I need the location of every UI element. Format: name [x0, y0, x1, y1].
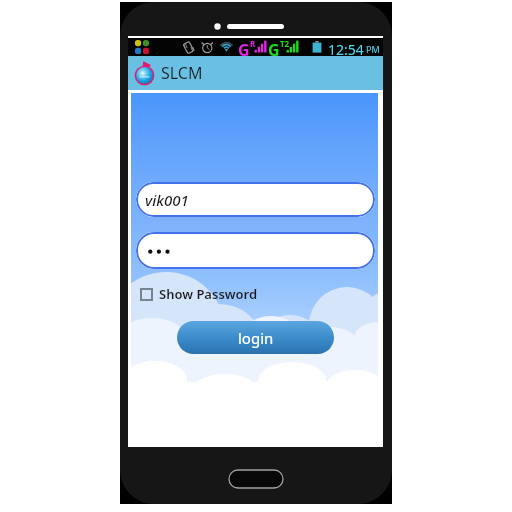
staticText: G [238, 39, 250, 57]
staticText: PM [366, 43, 380, 55]
staticText: R [250, 38, 256, 49]
staticText: vik001 [145, 190, 189, 210]
button[interactable]: login [177, 321, 334, 354]
button[interactable]: SLCM logo [128, 56, 383, 90]
other: SLCM logo [134, 65, 155, 86]
button[interactable]: vik001 [136, 182, 375, 217]
staticText: login [238, 328, 274, 348]
staticText: G [268, 39, 280, 57]
button[interactable]: Show Password [140, 284, 258, 304]
staticText: 12:54 [328, 40, 364, 58]
staticText: SLCM [161, 62, 203, 84]
staticText: T2 [280, 38, 290, 49]
staticText: Show Password [159, 285, 258, 303]
button[interactable] [136, 232, 375, 269]
